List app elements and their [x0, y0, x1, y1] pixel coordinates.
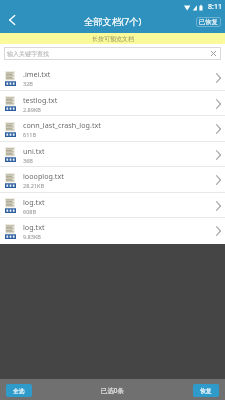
- staticText: log.txt: [23, 197, 45, 207]
- button[interactable]: Back: [0, 13, 23, 33]
- staticText: 已恢复: [199, 18, 218, 26]
- staticText: 32B: [23, 80, 33, 87]
- staticText: 全选: [13, 387, 25, 394]
- button[interactable]: loooplog.txt: [0, 167, 225, 193]
- staticText: 36B: [23, 157, 33, 164]
- staticText: loooplog.txt: [23, 171, 64, 181]
- staticText: 恢复: [200, 387, 212, 394]
- button[interactable]: log.txt: [0, 218, 225, 244]
- button[interactable]: conn_last_crash_log.txt: [0, 116, 225, 142]
- staticText: .imei.txt: [23, 69, 51, 79]
- staticText: 28.21KB: [23, 182, 45, 189]
- staticText: testlog.txt: [23, 95, 58, 105]
- staticText: 输入关键字查找: [7, 50, 49, 58]
- staticText: 2.89KB: [23, 106, 41, 113]
- button[interactable]: 全选: [6, 384, 32, 397]
- staticText: 9.83KB: [23, 233, 41, 240]
- button[interactable]: 恢复: [193, 384, 219, 397]
- staticText: uni.txt: [23, 146, 45, 156]
- button[interactable]: log.txt: [0, 193, 225, 218]
- button[interactable]: uni.txt: [0, 142, 225, 167]
- button[interactable]: Clear: [209, 49, 218, 58]
- staticText: 608B: [23, 208, 37, 215]
- button[interactable]: 已恢复: [196, 17, 221, 27]
- button[interactable]: testlog.txt: [0, 91, 225, 116]
- staticText: 8:11: [208, 2, 222, 12]
- button[interactable]: .imei.txt: [0, 65, 225, 91]
- staticText: conn_last_crash_log.txt: [23, 120, 101, 130]
- staticText: log.txt: [23, 222, 45, 232]
- staticText: 已选0条: [101, 386, 124, 395]
- staticText: 全部文档(7个): [84, 15, 142, 28]
- staticText: 611B: [23, 131, 37, 138]
- staticText: 长按可预览文档: [92, 35, 134, 43]
